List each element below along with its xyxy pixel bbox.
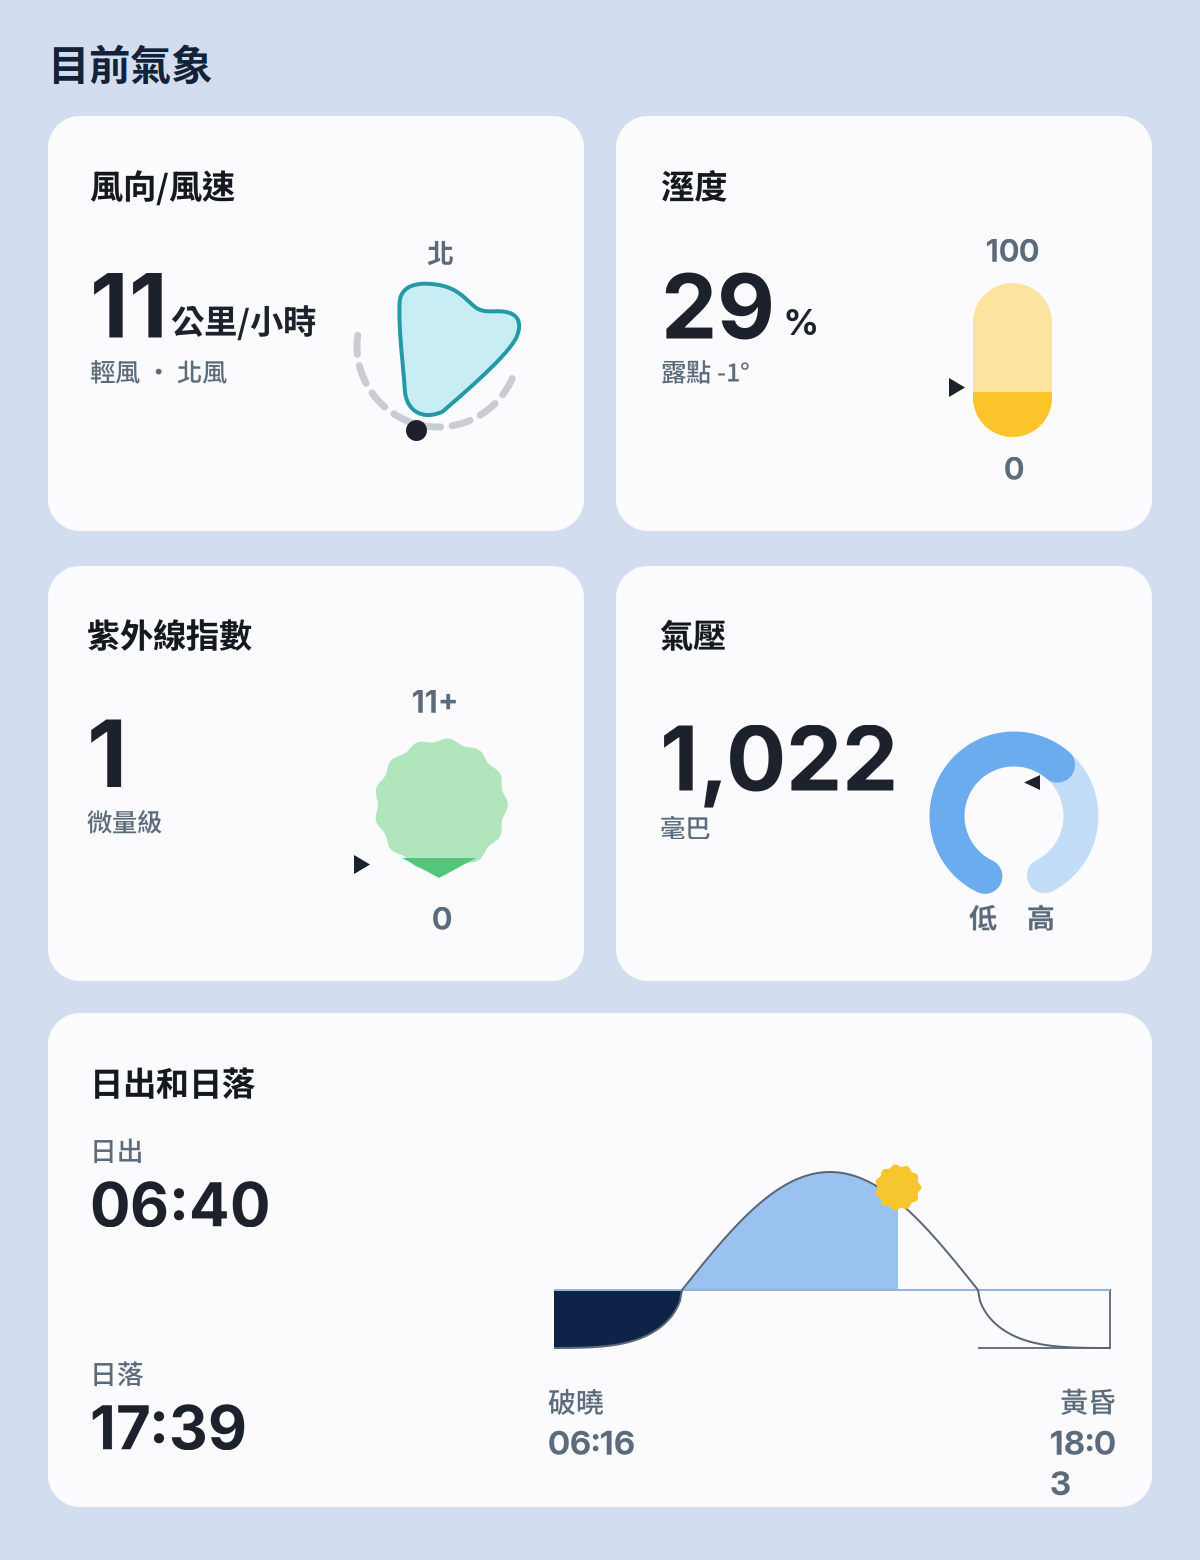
staticText: 風向/風速 [90,160,235,208]
button[interactable]: 溼度 [616,116,1152,531]
staticText: 1,022 [660,704,898,812]
staticText: 100 [986,232,1039,269]
staticText: 微量級 [87,802,162,839]
staticText: 1 [87,697,127,810]
staticText: 露點 -1° [661,352,750,389]
staticText: 18:03 [1050,1422,1116,1503]
button[interactable]: 紫外線指數 [48,566,584,981]
staticText: 0 [432,900,452,937]
staticText: 11 [90,251,168,359]
staticText: 29 [661,252,775,360]
staticText: 破曉 [548,1380,604,1420]
staticText: 紫外線指數 [87,609,252,657]
staticText: 氣壓 [660,609,726,657]
staticText: 輕風 • 北風 [90,352,227,389]
staticText: 日落 [90,1353,144,1392]
staticText: 11+ [412,683,458,720]
button[interactable]: 日出和日落 [48,1013,1152,1507]
staticText: 06:16 [548,1422,635,1463]
staticText: 0 [1004,450,1024,487]
staticText: 公里/小時 [171,295,316,343]
button[interactable]: 風向/風速 [48,116,584,531]
staticText: 17:39 [90,1391,247,1464]
staticText: % [784,300,819,344]
staticText: 毫巴 [660,808,710,845]
staticText: 日出和日落 [90,1057,255,1105]
staticText: 日出 [90,1130,144,1169]
staticText: 北 [427,232,454,271]
staticText: 高 [1027,896,1055,936]
staticText: 06:40 [90,1168,270,1241]
button[interactable]: 氣壓 [616,566,1152,981]
staticText: 低 [969,896,997,936]
staticText: 目前氣象 [48,32,212,92]
staticText: 溼度 [661,160,727,208]
staticText: 黃昏 [1060,1380,1116,1420]
